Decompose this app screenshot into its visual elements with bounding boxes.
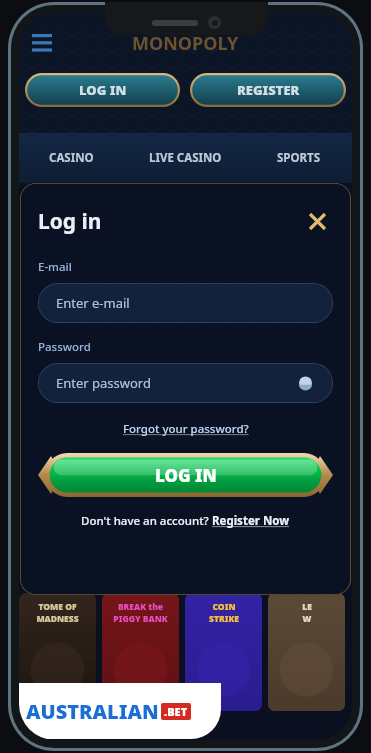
staticText: COIN STRIKE — [209, 601, 239, 625]
staticText: Don't have an account? — [81, 513, 212, 529]
staticText: AUSTRALIAN — [26, 698, 159, 725]
staticText: CASINO — [49, 150, 94, 166]
button[interactable]: SPORTS — [246, 137, 352, 179]
button[interactable]: Enter password — [38, 363, 333, 403]
button[interactable]: Show password — [295, 373, 315, 393]
button[interactable]: Close — [301, 205, 333, 237]
staticText: Enter password — [56, 374, 151, 392]
staticText: BREAK the PIGGY BANK — [113, 601, 168, 625]
staticText: Log in — [38, 207, 102, 236]
staticText: Password — [38, 339, 91, 355]
button[interactable]: BREAK the PIGGY BANK — [102, 593, 179, 711]
staticText: SPORTS — [277, 150, 321, 166]
staticText: E-mail — [38, 259, 72, 275]
staticText: .BET — [164, 704, 188, 719]
staticText: LOG IN — [155, 464, 217, 487]
button[interactable]: Forgot your password? — [119, 417, 253, 441]
staticText: MONOPOLY — [132, 31, 239, 56]
staticText: LE W — [302, 601, 312, 625]
staticText: Forgot your password? — [123, 421, 249, 437]
staticText: Enter e-mail — [56, 294, 130, 312]
button[interactable]: TOME OF MADNESS — [19, 593, 96, 711]
staticText: TOME OF MADNESS — [36, 601, 79, 625]
button[interactable]: LE W — [268, 593, 345, 711]
button[interactable]: CASINO — [19, 137, 124, 179]
button[interactable]: Menu — [25, 27, 59, 61]
button[interactable]: REGISTER — [190, 73, 346, 107]
staticText: LOG IN — [79, 81, 127, 99]
button[interactable]: LOG IN — [38, 453, 333, 497]
button[interactable]: LIVE CASINO — [124, 137, 246, 179]
button[interactable]: LOG IN — [25, 73, 180, 107]
staticText: LIVE CASINO — [149, 150, 222, 166]
button[interactable]: COIN STRIKE — [185, 593, 262, 711]
button[interactable]: Register Now — [212, 513, 290, 529]
staticText: Register Now — [212, 513, 290, 529]
button[interactable]: Enter e-mail — [38, 283, 333, 323]
staticText: REGISTER — [237, 81, 300, 99]
